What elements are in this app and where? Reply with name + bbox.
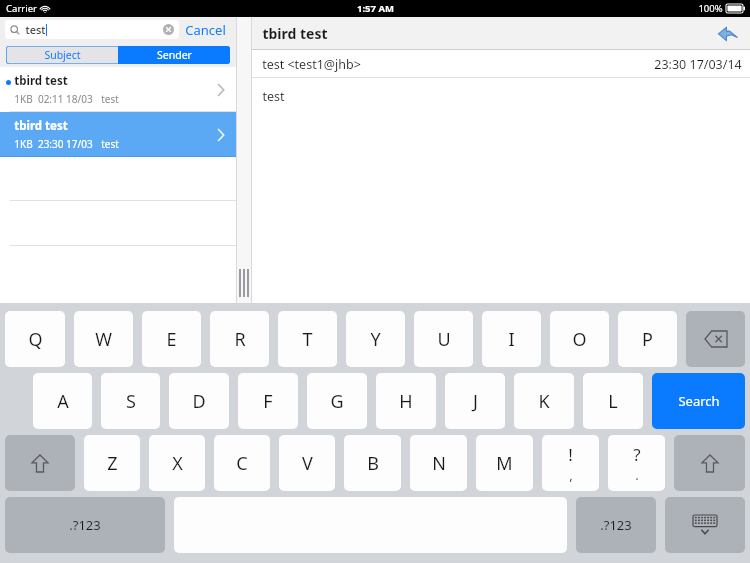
button[interactable]: F — [238, 373, 298, 429]
button[interactable]: V — [279, 435, 335, 491]
staticText: K — [538, 389, 550, 414]
staticText: ? — [633, 443, 641, 466]
button[interactable]: Cancel — [179, 21, 232, 39]
staticText: Q — [28, 327, 43, 352]
staticText: I — [508, 327, 515, 352]
button[interactable]: ? — [608, 435, 665, 491]
button[interactable]: M — [476, 435, 533, 491]
button[interactable]: ! — [542, 435, 599, 491]
button[interactable]: Clear search — [163, 24, 174, 35]
button[interactable]: tbird test — [0, 112, 236, 157]
staticText: W — [95, 327, 112, 352]
staticText: D — [192, 389, 206, 414]
button[interactable]: tbird test — [0, 67, 236, 112]
staticText: , — [569, 466, 573, 484]
staticText: O — [572, 327, 587, 352]
button[interactable]: T — [278, 311, 337, 367]
staticText: N — [432, 451, 446, 476]
button[interactable]: H — [376, 373, 436, 429]
button[interactable]: E — [142, 311, 201, 367]
staticText: G — [330, 389, 344, 414]
staticText: X — [172, 451, 183, 476]
staticText: Subject — [44, 48, 81, 62]
staticText: test <test1@jhb> — [262, 56, 361, 73]
staticText: E — [166, 327, 177, 352]
staticText: P — [642, 327, 653, 352]
staticText: 1KB 23:30 17/03 — [14, 137, 93, 151]
staticText: U — [437, 327, 451, 352]
staticText: Search — [678, 392, 720, 410]
button[interactable]: Shift — [674, 435, 745, 491]
staticText: test — [101, 137, 119, 151]
button[interactable]: L — [583, 373, 643, 429]
staticText: . — [635, 466, 639, 484]
button[interactable] — [0, 157, 236, 201]
staticText: 1:57 AM — [357, 2, 394, 15]
button[interactable]: R — [210, 311, 269, 367]
button[interactable]: Search — [652, 373, 745, 429]
staticText: Y — [370, 327, 381, 352]
staticText: R — [234, 327, 246, 352]
button[interactable]: A — [33, 373, 92, 429]
button[interactable]: .?123 — [576, 497, 656, 553]
staticText: Sender — [157, 48, 192, 62]
staticText: 1KB 02:11 18/03 — [14, 92, 93, 106]
button[interactable]: X — [149, 435, 205, 491]
staticText: test — [262, 88, 285, 105]
staticText: Z — [107, 451, 118, 476]
staticText: M — [496, 451, 513, 476]
button[interactable]: C — [214, 435, 270, 491]
button[interactable]: D — [169, 373, 229, 429]
staticText: S — [126, 389, 136, 414]
button[interactable]: S — [101, 373, 160, 429]
button[interactable]: G — [307, 373, 367, 429]
staticText: tbird test — [262, 24, 328, 43]
button[interactable]: P — [618, 311, 677, 367]
button[interactable]: .?123 — [5, 497, 165, 553]
staticText: T — [302, 327, 313, 352]
staticText: Cancel — [185, 21, 226, 39]
button[interactable]: K — [514, 373, 574, 429]
staticText: 100% — [698, 2, 723, 15]
staticText: F — [263, 389, 273, 414]
staticText: H — [399, 389, 413, 414]
staticText: J — [473, 389, 478, 414]
staticText: A — [57, 389, 69, 414]
button[interactable]: Z — [84, 435, 140, 491]
button[interactable]: I — [482, 311, 541, 367]
button[interactable]: J — [445, 373, 505, 429]
staticText: L — [608, 389, 618, 414]
button[interactable]: Delete — [686, 311, 745, 367]
button[interactable]: W — [74, 311, 133, 367]
button[interactable]: Q — [5, 311, 65, 367]
button[interactable]: Subject — [6, 46, 118, 64]
staticText: ! — [568, 443, 573, 466]
staticText: .?123 — [600, 516, 632, 534]
button[interactable] — [0, 201, 236, 246]
staticText: C — [236, 451, 248, 476]
staticText: test — [101, 92, 119, 106]
button[interactable]: Y — [346, 311, 405, 367]
staticText: 23:30 17/03/14 — [654, 56, 742, 73]
button[interactable]: N — [410, 435, 467, 491]
staticText: tbird test — [14, 73, 68, 89]
button[interactable]: B — [344, 435, 401, 491]
button[interactable]: Reply — [716, 22, 740, 46]
staticText: Carrier — [6, 2, 37, 15]
button[interactable]: Shift — [5, 435, 75, 491]
staticText: .?123 — [69, 516, 101, 534]
staticText: B — [367, 451, 379, 476]
staticText: test — [25, 22, 46, 37]
button[interactable]: O — [550, 311, 609, 367]
button[interactable]: Hide keyboard — [665, 497, 745, 553]
staticText: V — [302, 451, 313, 476]
button[interactable]: U — [414, 311, 473, 367]
staticText: tbird test — [14, 118, 68, 134]
button[interactable]: Sender — [118, 46, 230, 64]
button[interactable]: test — [5, 20, 179, 39]
